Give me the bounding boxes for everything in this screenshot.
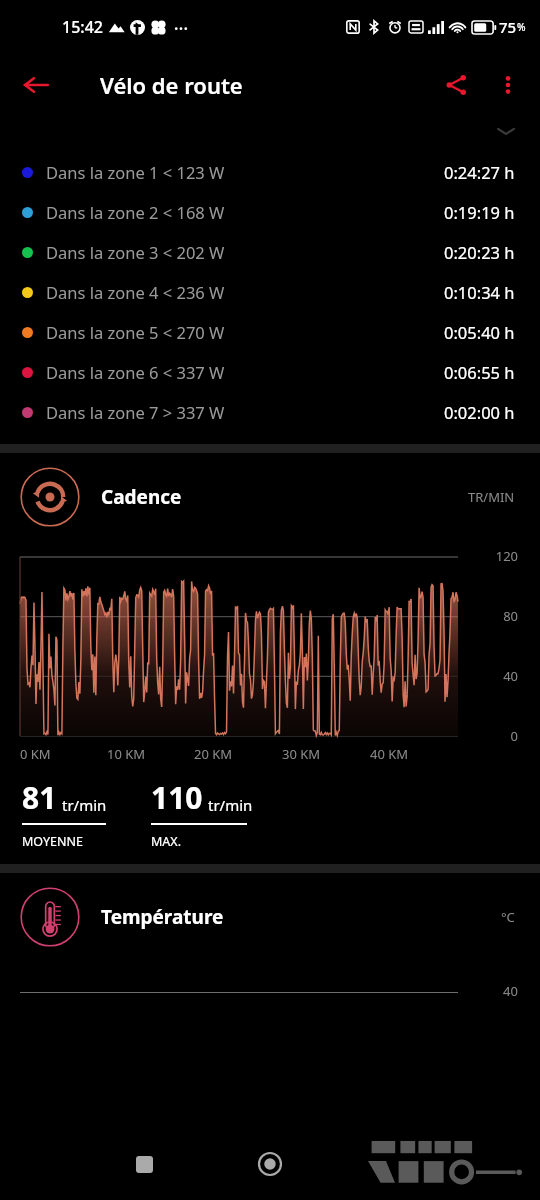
staticText: 0:06:55 h bbox=[444, 361, 515, 383]
staticText: Dans la zone 5 < 270 W bbox=[46, 321, 444, 343]
staticText: % bbox=[517, 20, 526, 34]
staticText: 10 KM bbox=[107, 745, 194, 763]
button[interactable]: Recent apps bbox=[120, 1140, 168, 1188]
staticText: 120 bbox=[470, 547, 518, 565]
button[interactable]: Dans la zone 3 < 202 W bbox=[0, 232, 540, 272]
staticText: 40 bbox=[503, 982, 518, 1000]
staticText: Dans la zone 1 < 123 W bbox=[46, 161, 444, 183]
staticText: 15:42 bbox=[62, 16, 103, 38]
staticText: MAX. bbox=[151, 833, 182, 850]
button[interactable]: Dans la zone 4 < 236 W bbox=[0, 272, 540, 312]
staticText: 80 bbox=[470, 607, 518, 625]
staticText: Cadence bbox=[101, 484, 468, 510]
staticText: 75 bbox=[499, 17, 517, 37]
staticText: tr/min bbox=[208, 795, 253, 815]
button[interactable]: Dans la zone 1 < 123 W bbox=[0, 152, 540, 192]
staticText: 0:10:34 h bbox=[444, 281, 515, 303]
staticText: Vélo de route bbox=[100, 70, 243, 100]
staticText: 40 bbox=[470, 667, 518, 685]
staticText: tr/min bbox=[62, 795, 107, 815]
button[interactable]: Dans la zone 5 < 270 W bbox=[0, 312, 540, 352]
staticText: 0:20:23 h bbox=[444, 241, 515, 263]
staticText: 30 KM bbox=[282, 745, 370, 763]
staticText: Température bbox=[101, 904, 501, 930]
staticText: Dans la zone 6 < 337 W bbox=[46, 361, 444, 383]
staticText: MOYENNE bbox=[22, 833, 83, 850]
button[interactable]: Home bbox=[246, 1140, 294, 1188]
staticText: 110 bbox=[151, 777, 203, 818]
button[interactable]: 110 bbox=[151, 777, 253, 850]
staticText: Dans la zone 7 > 337 W bbox=[46, 401, 444, 423]
staticText: 0:19:19 h bbox=[444, 201, 515, 223]
button[interactable]: Cadence bbox=[0, 453, 540, 541]
staticText: 81 bbox=[22, 777, 57, 818]
staticText: 0:05:40 h bbox=[444, 321, 515, 343]
staticText: 0:24:27 h bbox=[444, 161, 515, 183]
button[interactable]: Share bbox=[430, 59, 482, 111]
staticText: Dans la zone 2 < 168 W bbox=[46, 201, 444, 223]
staticText: 0 KM bbox=[20, 745, 107, 763]
staticText: 0 bbox=[470, 727, 518, 745]
staticText: 20 KM bbox=[194, 745, 282, 763]
staticText: 0:02:00 h bbox=[444, 401, 515, 423]
staticText: °C bbox=[501, 908, 515, 926]
staticText: TR/MIN bbox=[468, 488, 515, 506]
button[interactable]: Dans la zone 6 < 337 W bbox=[0, 352, 540, 392]
staticText: Dans la zone 3 < 202 W bbox=[46, 241, 444, 263]
staticText: Dans la zone 4 < 236 W bbox=[46, 281, 444, 303]
button[interactable]: Back bbox=[10, 59, 62, 111]
button[interactable]: More options bbox=[482, 59, 534, 111]
button[interactable]: Dans la zone 7 > 337 W bbox=[0, 392, 540, 432]
staticText: 40 KM bbox=[370, 745, 458, 763]
button[interactable]: 81 bbox=[22, 777, 107, 850]
button[interactable]: Température bbox=[0, 873, 540, 961]
button[interactable]: Dans la zone 2 < 168 W bbox=[0, 192, 540, 232]
